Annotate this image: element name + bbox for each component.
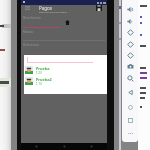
button[interactable]: Rotate left bbox=[127, 29, 134, 36]
button[interactable]: Save bbox=[96, 5, 102, 11]
button[interactable]: Tool bbox=[127, 130, 134, 137]
button[interactable]: Home bbox=[127, 89, 134, 96]
button[interactable]: Prueba bbox=[25, 65, 105, 75]
button[interactable]: Rotate right bbox=[127, 41, 134, 48]
button[interactable]: Prueba2 bbox=[25, 76, 105, 86]
staticText: Beneficiario bbox=[23, 16, 41, 20]
button[interactable]: Home bbox=[65, 20, 70, 25]
button[interactable]: Back bbox=[127, 75, 134, 82]
staticText: pago test formato pagos bbox=[39, 10, 67, 13]
staticText: Prueba bbox=[36, 66, 50, 71]
button[interactable]: Volume up bbox=[127, 6, 134, 13]
staticText: 1.23 bbox=[36, 71, 42, 75]
button[interactable]: More bbox=[127, 117, 134, 124]
staticText: Referencia bbox=[23, 43, 39, 47]
button[interactable]: Recents bbox=[127, 104, 134, 111]
button[interactable]: Menu bbox=[25, 6, 30, 10]
staticText: 1.13 bbox=[36, 82, 42, 86]
button[interactable]: Volume down bbox=[127, 18, 134, 25]
staticText: Monto bbox=[23, 30, 33, 34]
button[interactable]: Screenshot bbox=[127, 52, 134, 59]
staticText: Pagos bbox=[39, 5, 52, 11]
button[interactable]: Nav 0 bbox=[35, 145, 38, 148]
button[interactable]: Zoom bbox=[127, 63, 134, 70]
staticText: Prueba2 bbox=[36, 77, 52, 82]
button[interactable]: Nav 2 bbox=[90, 145, 93, 148]
button[interactable]: Nav 1 bbox=[63, 145, 66, 148]
